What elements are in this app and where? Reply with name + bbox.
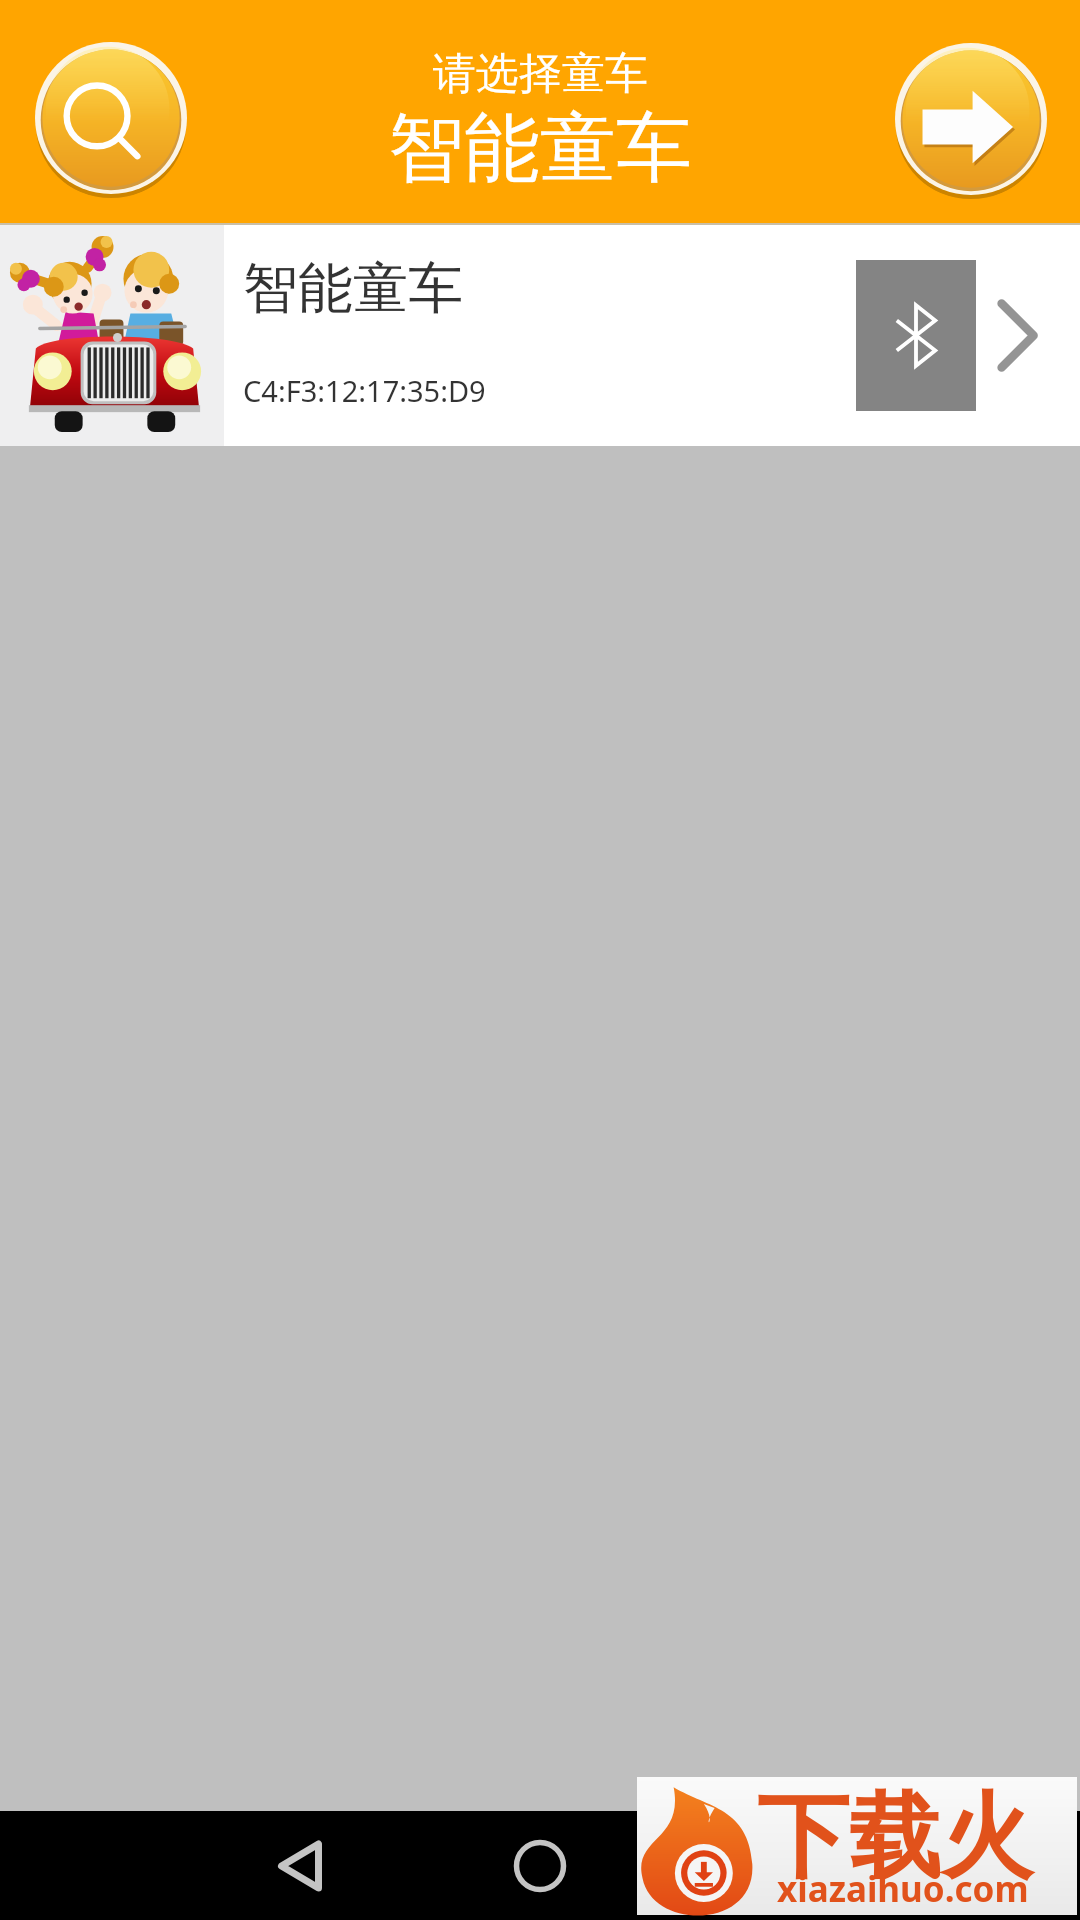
button[interactable]: 智能童车	[0, 225, 1080, 446]
button[interactable]: Open device	[976, 225, 1080, 446]
staticText: 智能童车	[243, 254, 463, 323]
button[interactable]: Search	[31, 38, 191, 198]
button[interactable]: Back	[256, 1822, 344, 1910]
staticText: C4:F3:12:17:35:D9	[243, 371, 486, 410]
staticText: xiazaihuo.com	[777, 1865, 1029, 1913]
staticText: 请选择童车	[433, 47, 648, 101]
button[interactable]: Home	[496, 1822, 584, 1910]
button[interactable]: Next	[891, 39, 1051, 199]
staticText: 下载火	[757, 1779, 1033, 1895]
button[interactable]: Bluetooth	[856, 260, 976, 411]
staticText: 智能童车	[388, 101, 692, 197]
